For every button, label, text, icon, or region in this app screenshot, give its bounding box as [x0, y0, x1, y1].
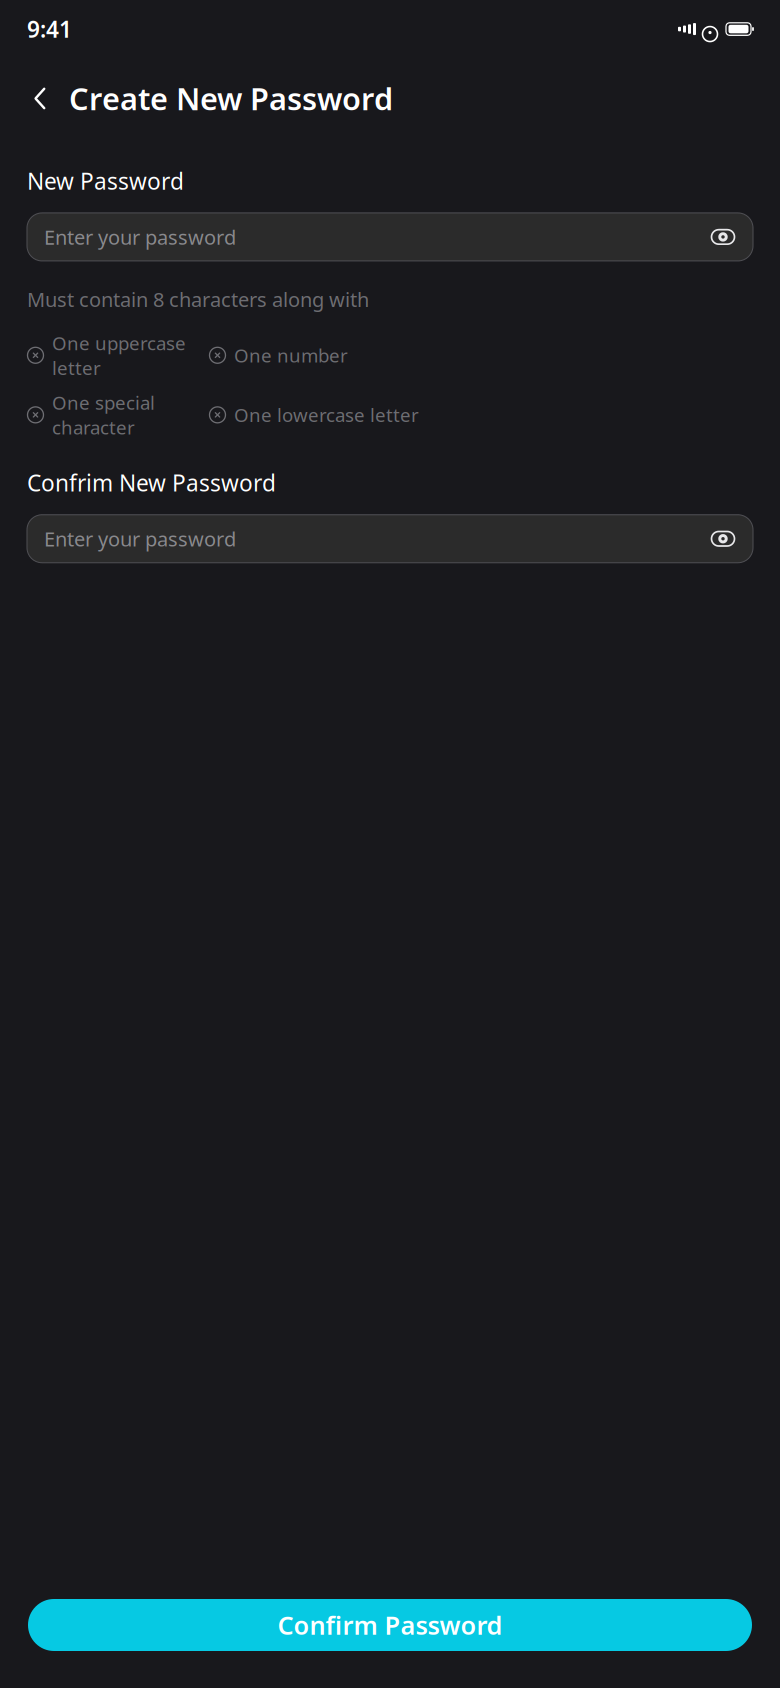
button[interactable]: Back [25, 81, 55, 115]
staticText: Enter your password [44, 224, 236, 250]
staticText: Must contain 8 characters along with [27, 286, 369, 312]
staticText: One number [234, 343, 348, 368]
staticText: One uppercase letter [52, 330, 186, 380]
staticText: Confrim New Password [27, 468, 276, 498]
staticText: Confirm Password [277, 1608, 502, 1642]
button[interactable]: Enter your password [27, 213, 753, 261]
staticText: One lowercase letter [234, 402, 419, 427]
staticText: Create New Password [69, 78, 393, 119]
staticText: 9:41 [27, 14, 72, 44]
button[interactable]: Enter your password [27, 515, 753, 563]
staticText: Enter your password [44, 525, 236, 552]
button[interactable]: Confirm Password [28, 1599, 752, 1651]
staticText: New Password [27, 166, 184, 196]
staticText: One special character [52, 390, 155, 440]
